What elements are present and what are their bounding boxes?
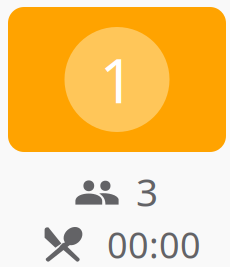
staticText: 1 <box>99 39 134 120</box>
button[interactable]: Step 1 <box>8 7 226 152</box>
staticText: 3 <box>136 166 158 217</box>
staticText: 00:00 <box>107 221 201 267</box>
